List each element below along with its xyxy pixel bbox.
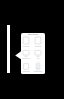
button[interactable] — [21, 36, 32, 47]
button[interactable] — [33, 36, 44, 47]
staticText: Monitor — [21, 57, 31, 60]
button[interactable] — [33, 49, 44, 60]
staticText: TV — [33, 57, 43, 60]
staticText: Speaker — [33, 70, 43, 73]
staticText: Phone — [21, 45, 31, 48]
staticText: Laptop — [21, 70, 31, 73]
button[interactable] — [33, 62, 44, 73]
staticText: Cast device — [21, 33, 45, 36]
staticText: Tablet — [33, 45, 43, 48]
button[interactable] — [21, 49, 32, 60]
button[interactable] — [21, 62, 32, 73]
